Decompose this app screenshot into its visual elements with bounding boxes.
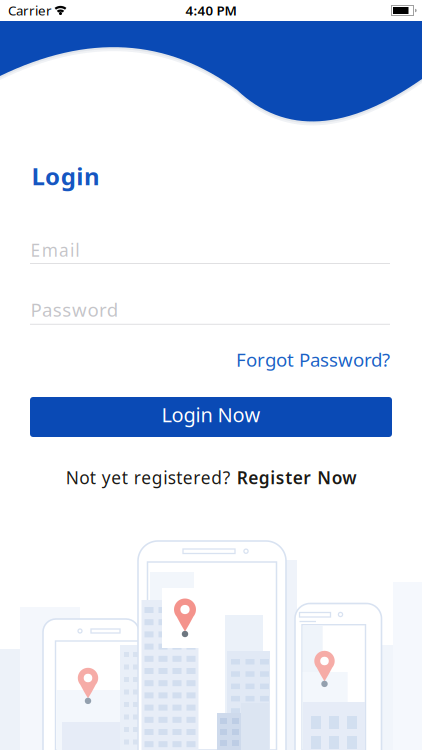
staticText: Login Now xyxy=(161,401,260,428)
button[interactable]: Password xyxy=(30,297,390,325)
staticText: 4:40 PM xyxy=(185,1,236,19)
button[interactable]: Not yet registered? Register Now xyxy=(66,466,356,489)
staticText: Not yet registered? Register Now xyxy=(66,466,356,489)
button[interactable]: Forgot Password? xyxy=(236,347,390,372)
staticText: Password xyxy=(30,297,123,322)
staticText: Login xyxy=(31,160,100,192)
staticText: Carrier xyxy=(8,1,52,19)
button[interactable]: Email xyxy=(30,238,390,264)
staticText: Email xyxy=(30,238,85,261)
staticText: Forgot Password? xyxy=(236,347,390,372)
button[interactable]: Login Now xyxy=(30,397,392,437)
